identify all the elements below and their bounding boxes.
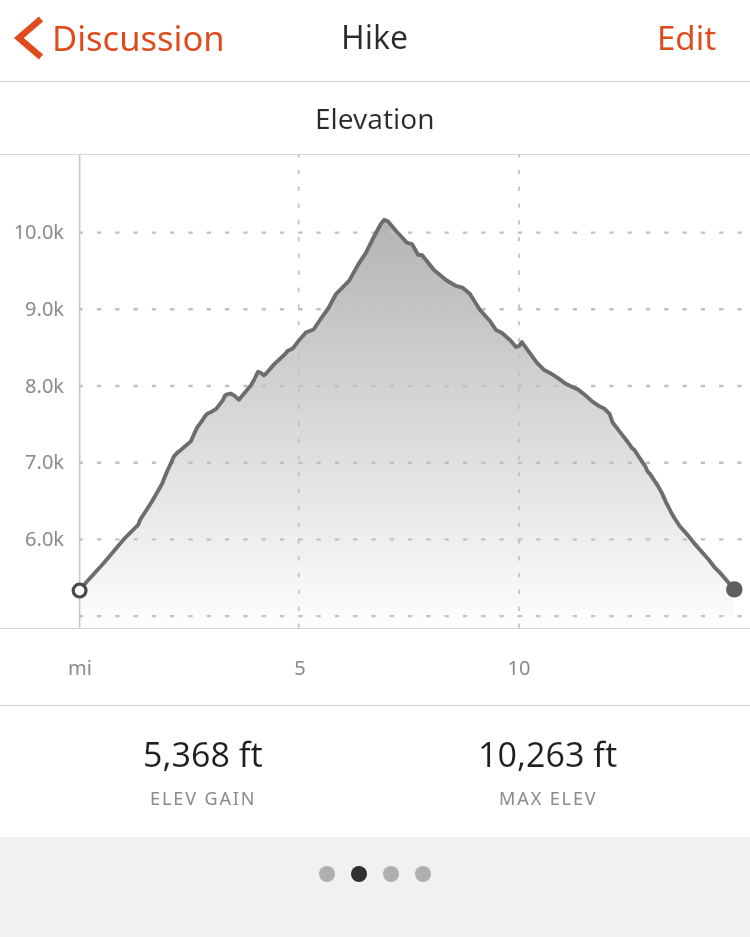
- staticText: Hike: [341, 15, 409, 59]
- staticText: mi: [40, 654, 120, 681]
- staticText: ELEV GAIN: [150, 786, 257, 811]
- staticText: 10.0k: [0, 218, 64, 245]
- staticText: MAX ELEV: [499, 786, 598, 811]
- staticText: 7.0k: [0, 448, 64, 475]
- staticText: 5: [260, 654, 340, 681]
- staticText: 9.0k: [0, 295, 64, 322]
- staticText: 6.0k: [0, 525, 64, 552]
- staticText: 5,368 ft: [143, 731, 263, 777]
- button[interactable]: Page 1: [319, 866, 335, 882]
- button[interactable]: Page 4: [415, 866, 431, 882]
- staticText: Discussion: [52, 14, 225, 61]
- staticText: Elevation: [315, 99, 435, 137]
- staticText: 10,263 ft: [478, 731, 618, 777]
- staticText: 10: [479, 654, 559, 681]
- button[interactable]: Page 3: [383, 866, 399, 882]
- button[interactable]: Page 2: [351, 866, 367, 882]
- button[interactable]: Edit: [637, 5, 750, 70]
- staticText: 8.0k: [0, 372, 64, 399]
- button[interactable]: Discussion: [0, 6, 237, 69]
